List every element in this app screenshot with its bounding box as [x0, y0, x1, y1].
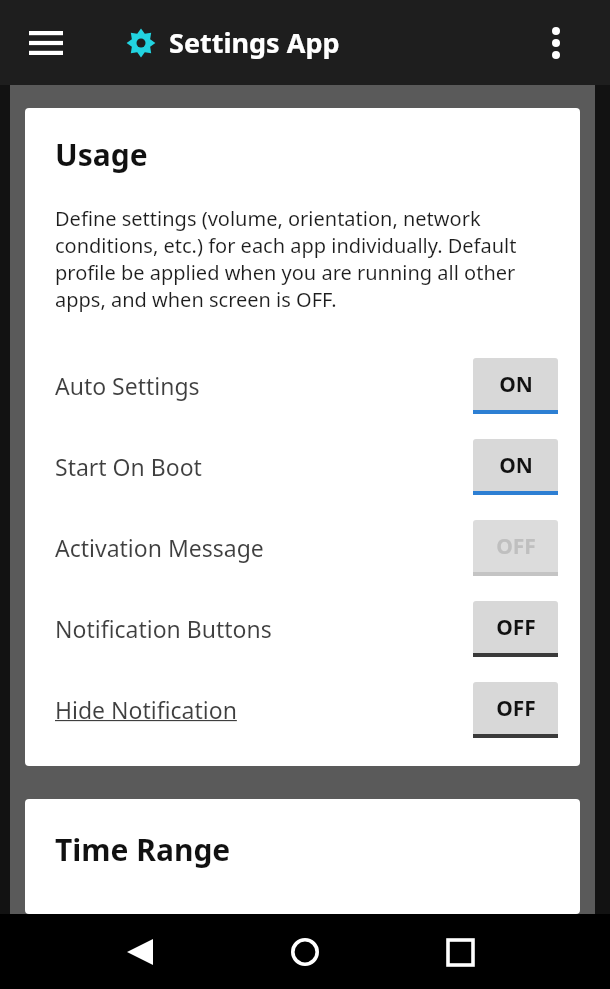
button[interactable]: Recent apps [430, 922, 490, 982]
button[interactable]: More options [530, 17, 582, 69]
staticText: OFF [496, 532, 536, 561]
button[interactable]: ON [473, 439, 558, 495]
staticText: OFF [496, 694, 536, 723]
staticText: Usage [55, 134, 148, 175]
button[interactable]: Back [110, 922, 170, 982]
button[interactable]: Activation Message [55, 507, 558, 588]
button[interactable]: OFF [473, 520, 558, 576]
staticText: ON [499, 370, 533, 399]
staticText: Settings App [169, 24, 340, 61]
button[interactable]: Start On Boot [55, 426, 558, 507]
staticText: Hide Notification [55, 694, 473, 725]
staticText: Auto Settings [55, 370, 473, 401]
button[interactable]: OFF [473, 682, 558, 738]
button[interactable]: Hide Notification [55, 669, 558, 750]
staticText: Define settings (volume, orientation, ne… [55, 205, 558, 313]
staticText: Time Range [55, 829, 231, 870]
staticText: Start On Boot [55, 451, 473, 482]
staticText: ON [499, 451, 533, 480]
button[interactable]: Open navigation menu [20, 17, 72, 69]
staticText: OFF [496, 613, 536, 642]
button[interactable]: Home [275, 922, 335, 982]
staticText: Activation Message [55, 532, 473, 563]
button[interactable]: Notification Buttons [55, 588, 558, 669]
staticText: Notification Buttons [55, 613, 473, 644]
button[interactable]: Auto Settings [55, 345, 558, 426]
button[interactable]: ON [473, 358, 558, 414]
button[interactable]: OFF [473, 601, 558, 657]
